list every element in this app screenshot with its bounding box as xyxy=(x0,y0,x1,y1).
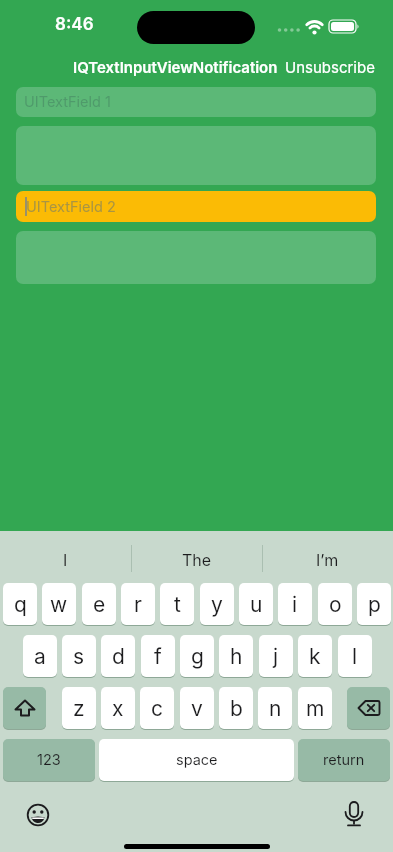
button[interactable]: v xyxy=(180,687,214,729)
staticText: 8:46 xyxy=(55,14,94,35)
staticText: b xyxy=(230,696,243,721)
button[interactable]: 123 xyxy=(3,739,95,781)
staticText: I’m xyxy=(316,550,339,569)
button[interactable]: e xyxy=(82,583,116,625)
button[interactable] xyxy=(347,687,390,729)
staticText: e xyxy=(93,592,106,617)
button[interactable]: w xyxy=(42,583,76,625)
staticText: r xyxy=(134,592,142,617)
button[interactable]: l xyxy=(338,635,372,677)
button[interactable]: h xyxy=(219,635,253,677)
button[interactable]: f xyxy=(141,635,175,677)
staticText: 123 xyxy=(37,751,61,769)
staticText: n xyxy=(269,696,282,721)
staticText: q xyxy=(14,592,27,617)
button[interactable]: q xyxy=(3,583,37,625)
staticText: UITextField 1 xyxy=(24,93,111,111)
staticText: w xyxy=(50,592,68,617)
button[interactable]: u xyxy=(239,583,273,625)
staticText: I xyxy=(63,550,68,569)
button[interactable]: x xyxy=(101,687,135,729)
button[interactable]: space xyxy=(99,739,294,781)
staticText: x xyxy=(112,696,124,721)
button[interactable]: k xyxy=(298,635,332,677)
staticText: s xyxy=(73,644,85,669)
button[interactable]: t xyxy=(160,583,194,625)
button[interactable]: i xyxy=(278,583,312,625)
button[interactable]: return xyxy=(298,739,390,781)
staticText: c xyxy=(151,696,163,721)
staticText: j xyxy=(273,644,279,669)
button[interactable] xyxy=(26,803,50,827)
staticText: m xyxy=(306,696,325,721)
button[interactable]: p xyxy=(357,583,391,625)
button[interactable]: I xyxy=(0,541,131,577)
button[interactable] xyxy=(3,687,46,729)
staticText: i xyxy=(292,592,298,617)
button[interactable]: g xyxy=(180,635,214,677)
button[interactable]: UITextField 2 xyxy=(16,191,376,222)
staticText: z xyxy=(73,696,85,721)
button[interactable]: j xyxy=(259,635,293,677)
staticText: p xyxy=(368,592,381,617)
staticText: k xyxy=(309,644,321,669)
staticText: a xyxy=(34,644,46,669)
button[interactable]: b xyxy=(219,687,253,729)
staticText: o xyxy=(329,592,342,617)
staticText: The xyxy=(182,550,212,569)
staticText: t xyxy=(174,592,181,617)
staticText: IQTextInputViewNotification xyxy=(73,58,278,76)
button[interactable]: d xyxy=(101,635,135,677)
staticText: g xyxy=(191,644,204,669)
staticText: return xyxy=(323,751,365,769)
staticText: u xyxy=(250,592,263,617)
button[interactable]: a xyxy=(23,635,57,677)
button[interactable]: Unsubscribe xyxy=(285,58,375,76)
staticText: h xyxy=(230,644,243,669)
button[interactable]: n xyxy=(258,687,292,729)
button[interactable]: y xyxy=(200,583,234,625)
button[interactable]: z xyxy=(62,687,96,729)
button[interactable]: c xyxy=(140,687,174,729)
button[interactable]: o xyxy=(318,583,352,625)
staticText: f xyxy=(154,644,162,669)
button[interactable]: The xyxy=(131,541,262,577)
staticText: v xyxy=(191,696,203,721)
staticText: d xyxy=(112,644,125,669)
staticText: y xyxy=(211,592,223,617)
staticText: UITextField 2 xyxy=(26,198,116,216)
staticText: l xyxy=(352,644,358,669)
button[interactable]: m xyxy=(298,687,332,729)
button[interactable]: r xyxy=(121,583,155,625)
button[interactable]: UITextField 1 xyxy=(16,87,376,117)
staticText: space xyxy=(176,751,218,769)
button[interactable]: I’m xyxy=(262,541,393,577)
button[interactable]: s xyxy=(62,635,96,677)
button[interactable] xyxy=(342,801,366,829)
